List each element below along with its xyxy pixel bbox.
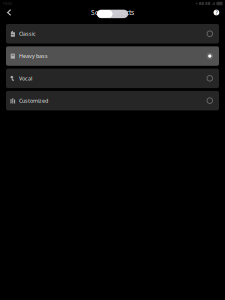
staticText: Classic [19,30,36,37]
button[interactable]: Customized [6,91,219,110]
staticText: Sound effects [91,8,134,17]
staticText: Vocal [19,75,32,82]
button[interactable]: Classic [6,24,219,43]
staticText: 19:03 [3,1,12,6]
staticText: ? [215,9,217,16]
staticText: Heavy bass [19,52,48,60]
button[interactable]: Back [0,7,17,18]
button[interactable]: Vocal [6,69,219,88]
button[interactable]: Toggle [97,10,128,18]
staticText: Customized [19,97,48,104]
button[interactable]: Heavy bass [6,46,219,66]
button[interactable]: Help [207,7,225,18]
